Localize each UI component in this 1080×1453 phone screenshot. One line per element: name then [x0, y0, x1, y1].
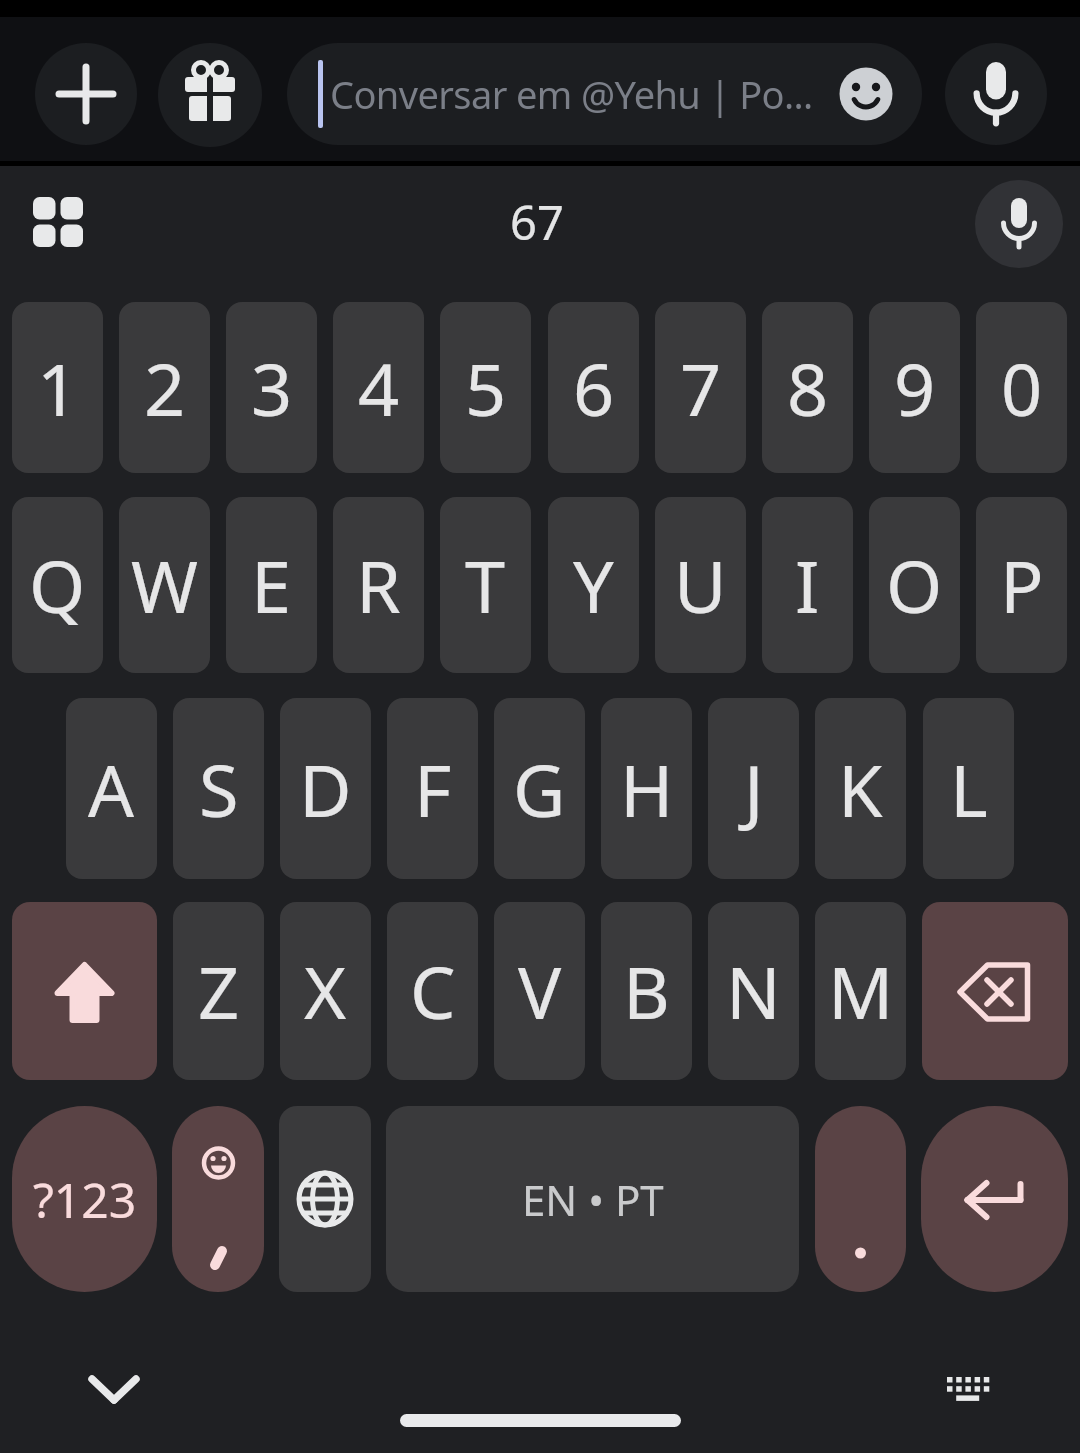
button[interactable]: X	[280, 902, 371, 1080]
staticText: S	[199, 740, 239, 838]
button[interactable]: W	[119, 497, 210, 673]
button[interactable]: T	[440, 497, 531, 673]
button[interactable]	[922, 902, 1068, 1080]
staticText: EN • PT	[522, 1171, 664, 1228]
button[interactable]	[172, 1106, 264, 1292]
button[interactable]: J	[708, 698, 799, 879]
staticText: B	[623, 942, 670, 1040]
staticText: C	[410, 942, 456, 1040]
button[interactable]: ?123	[12, 1106, 157, 1292]
staticText: 1	[37, 339, 79, 437]
staticText: Conversar em @Yehu | Po...	[330, 68, 812, 120]
staticText: M	[828, 942, 894, 1040]
staticText: R	[356, 536, 401, 634]
button[interactable]	[35, 43, 137, 145]
staticText: 2	[144, 339, 186, 437]
button[interactable]: EN • PT	[386, 1106, 799, 1292]
button[interactable]	[279, 1106, 371, 1292]
staticText: H	[620, 740, 674, 838]
button[interactable]: R	[333, 497, 424, 673]
button[interactable]: 6	[548, 302, 639, 473]
button[interactable]	[80, 1355, 148, 1423]
staticText: W	[131, 536, 198, 634]
staticText: P	[1000, 536, 1044, 634]
button[interactable]: 4	[333, 302, 424, 473]
button[interactable]	[33, 197, 83, 247]
staticText: 9	[894, 339, 936, 437]
staticText: 7	[680, 339, 722, 437]
button[interactable]	[815, 1106, 906, 1292]
button[interactable]: S	[173, 698, 264, 879]
button[interactable]: B	[601, 902, 692, 1080]
staticText: G	[513, 740, 566, 838]
button[interactable]: Conversar em @Yehu | Po...	[287, 43, 922, 145]
button[interactable]: 2	[119, 302, 210, 473]
button[interactable]: D	[280, 698, 371, 879]
button[interactable]: 5	[440, 302, 531, 473]
staticText: Z	[198, 942, 240, 1040]
button[interactable]: A	[66, 698, 157, 879]
staticText: F	[414, 740, 452, 838]
button[interactable]: Y	[548, 497, 639, 673]
button[interactable]: 3	[226, 302, 317, 473]
staticText: X	[304, 942, 347, 1040]
button[interactable]: 1	[12, 302, 103, 473]
button[interactable]: M	[815, 902, 906, 1080]
staticText: N	[726, 942, 781, 1040]
button[interactable]: 8	[762, 302, 853, 473]
button[interactable]: G	[494, 698, 585, 879]
staticText: A	[88, 740, 135, 838]
staticText: 0	[1001, 339, 1043, 437]
staticText: I	[795, 536, 820, 634]
staticText: E	[251, 536, 292, 634]
button[interactable]: E	[226, 497, 317, 673]
staticText: J	[744, 740, 764, 838]
button[interactable]: 7	[655, 302, 746, 473]
staticText: O	[886, 536, 943, 634]
staticText: T	[465, 536, 506, 634]
button[interactable]: H	[601, 698, 692, 879]
staticText: 5	[465, 339, 507, 437]
button[interactable]: L	[923, 698, 1014, 879]
staticText: D	[299, 740, 352, 838]
button[interactable]: N	[708, 902, 799, 1080]
button[interactable]: 0	[976, 302, 1067, 473]
staticText: Q	[29, 536, 86, 634]
button[interactable]: C	[387, 902, 478, 1080]
button[interactable]	[945, 43, 1047, 145]
button[interactable]: V	[494, 902, 585, 1080]
button[interactable]	[12, 902, 157, 1080]
staticText: 3	[251, 339, 293, 437]
staticText: ?123	[33, 1167, 137, 1232]
staticText: V	[518, 942, 562, 1040]
staticText: 6	[573, 339, 615, 437]
button[interactable]: O	[869, 497, 960, 673]
button[interactable]: K	[815, 698, 906, 879]
staticText: 4	[358, 339, 400, 437]
staticText: 67	[510, 190, 564, 254]
button[interactable]	[930, 1360, 1004, 1420]
button[interactable]: P	[976, 497, 1067, 673]
staticText: U	[674, 536, 727, 634]
staticText: 8	[787, 339, 829, 437]
button[interactable]: Q	[12, 497, 103, 673]
button[interactable]	[975, 180, 1063, 268]
button[interactable]: U	[655, 497, 746, 673]
button[interactable]	[158, 43, 262, 147]
button[interactable]: I	[762, 497, 853, 673]
staticText: K	[838, 740, 883, 838]
button[interactable]: 9	[869, 302, 960, 473]
staticText: L	[950, 740, 988, 838]
button[interactable]: Z	[173, 902, 264, 1080]
button[interactable]	[921, 1106, 1068, 1292]
staticText: Y	[573, 536, 614, 634]
button[interactable]: F	[387, 698, 478, 879]
